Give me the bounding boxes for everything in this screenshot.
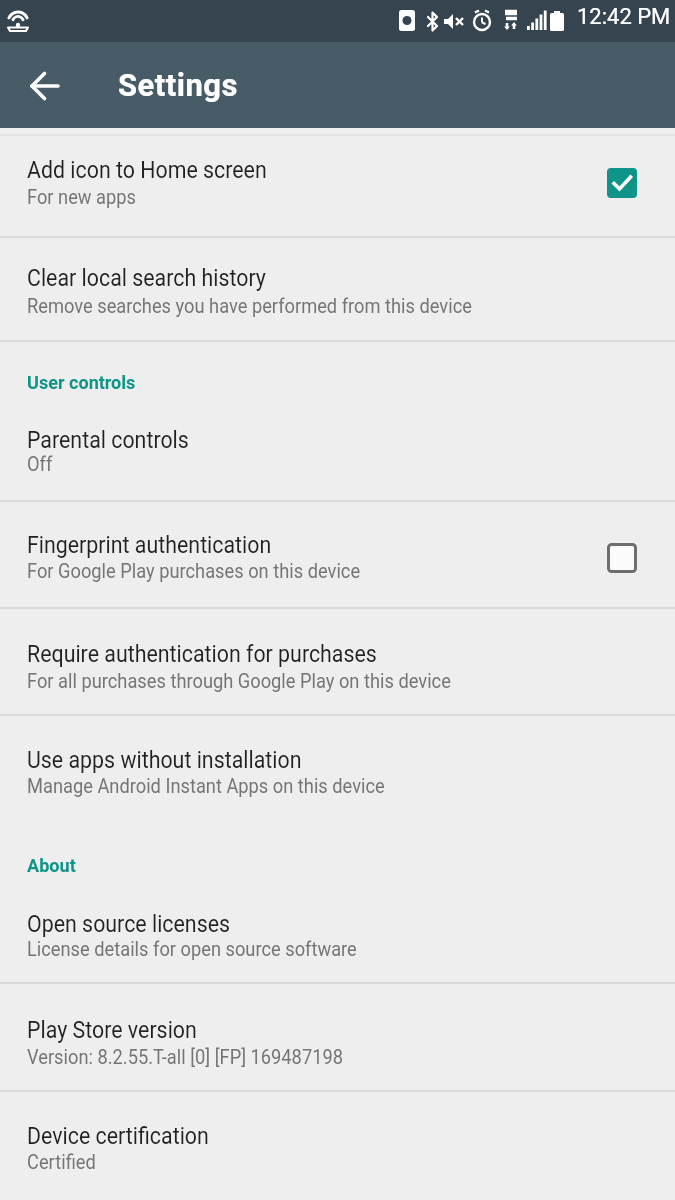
staticText: 12:42 PM xyxy=(577,4,671,30)
staticText: About xyxy=(27,854,76,876)
staticText: Clear local search history xyxy=(27,264,266,292)
staticText: Certified xyxy=(27,1150,97,1175)
button[interactable] xyxy=(30,70,62,102)
button[interactable]: Clear local search history xyxy=(0,238,675,340)
button[interactable]: Fingerprint authentication xyxy=(0,502,675,607)
button[interactable]: Add icon to Home screen xyxy=(0,134,675,236)
button[interactable]: Use apps without installation xyxy=(0,716,675,822)
staticText: Version: 8.2.55.T-all [0] [FP] 169487198 xyxy=(27,1045,344,1070)
staticText: Off xyxy=(27,452,53,477)
staticText: Use apps without installation xyxy=(27,746,302,774)
staticText: Settings xyxy=(118,67,239,103)
staticText: For Google Play purchases on this device xyxy=(27,559,360,584)
button[interactable]: Play Store version xyxy=(0,984,675,1090)
button[interactable]: Device certification xyxy=(0,1092,675,1200)
staticText: Remove searches you have performed from … xyxy=(27,294,472,319)
button[interactable]: Require authentication for purchases xyxy=(0,609,675,714)
staticText: User controls xyxy=(27,371,136,393)
staticText: License details for open source software xyxy=(27,937,358,962)
staticText: Play Store version xyxy=(27,1016,197,1044)
staticText: Require authentication for purchases xyxy=(27,640,378,668)
staticText: For all purchases through Google Play on… xyxy=(27,669,452,694)
button[interactable]: Parental controls xyxy=(0,404,675,500)
staticText: For new apps xyxy=(27,185,137,210)
staticText: Open source licenses xyxy=(27,910,231,938)
staticText: Parental controls xyxy=(27,426,189,454)
staticText: Fingerprint authentication xyxy=(27,531,272,559)
staticText: Manage Android Instant Apps on this devi… xyxy=(27,774,385,799)
staticText: Add icon to Home screen xyxy=(27,156,267,184)
staticText: Device certification xyxy=(27,1122,209,1150)
button[interactable]: Open source licenses xyxy=(0,890,675,982)
